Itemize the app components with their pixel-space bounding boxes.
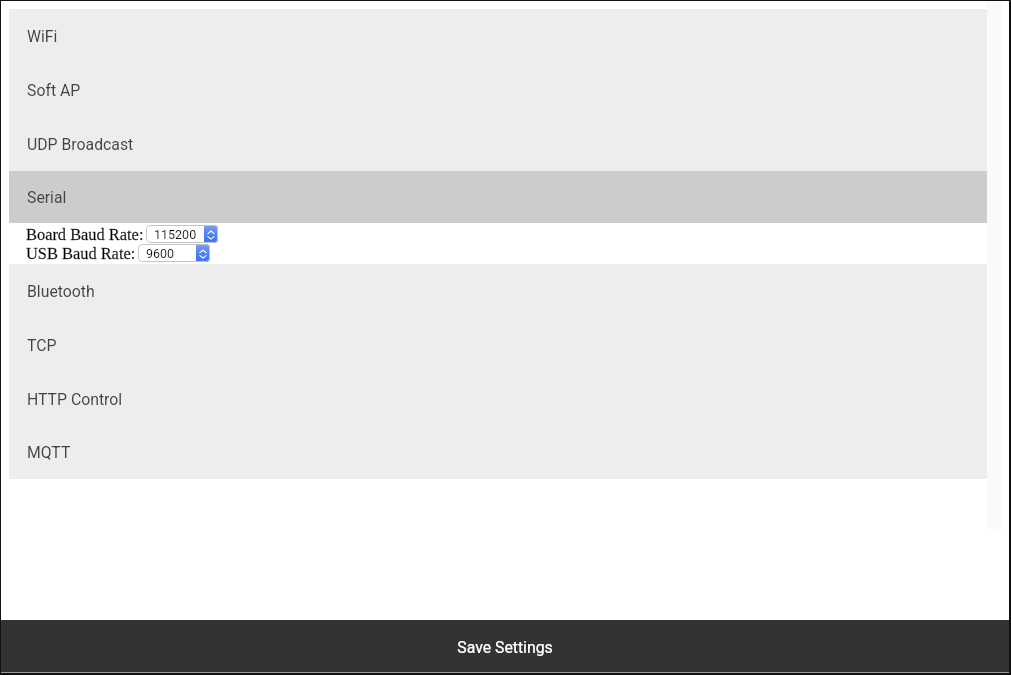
staticText: MQTT [27,443,71,462]
button[interactable]: Select 9600 [138,244,210,262]
button[interactable]: Save Settings [1,620,1009,672]
button[interactable]: HTTP Control [9,372,987,426]
button[interactable]: Serial [9,171,987,223]
staticText: USB Baud Rate: [26,244,136,262]
staticText: UDP Broadcast [27,135,134,154]
button[interactable]: UDP Broadcast [9,117,987,171]
staticText: HTTP Control [27,390,123,409]
button[interactable]: Bluetooth [9,264,987,318]
staticText: Serial [27,188,67,207]
staticText: 115200 [154,227,197,242]
staticText: USB Baud Rate: [26,244,136,262]
button[interactable]: TCP [9,318,987,372]
staticText: Soft AP [27,81,81,100]
staticText: Board Baud Rate: [26,225,144,243]
button[interactable]: Soft AP [9,63,987,117]
button[interactable]: WiFi [9,9,987,63]
staticText: WiFi [27,27,58,46]
staticText: Board Baud Rate: [26,225,144,243]
staticText: 9600 [146,246,175,261]
staticText: Bluetooth [27,282,95,301]
button[interactable]: MQTT [9,426,987,479]
staticText: TCP [27,336,57,355]
staticText: Save Settings [457,638,553,657]
button[interactable]: Select 115200 [146,225,218,243]
